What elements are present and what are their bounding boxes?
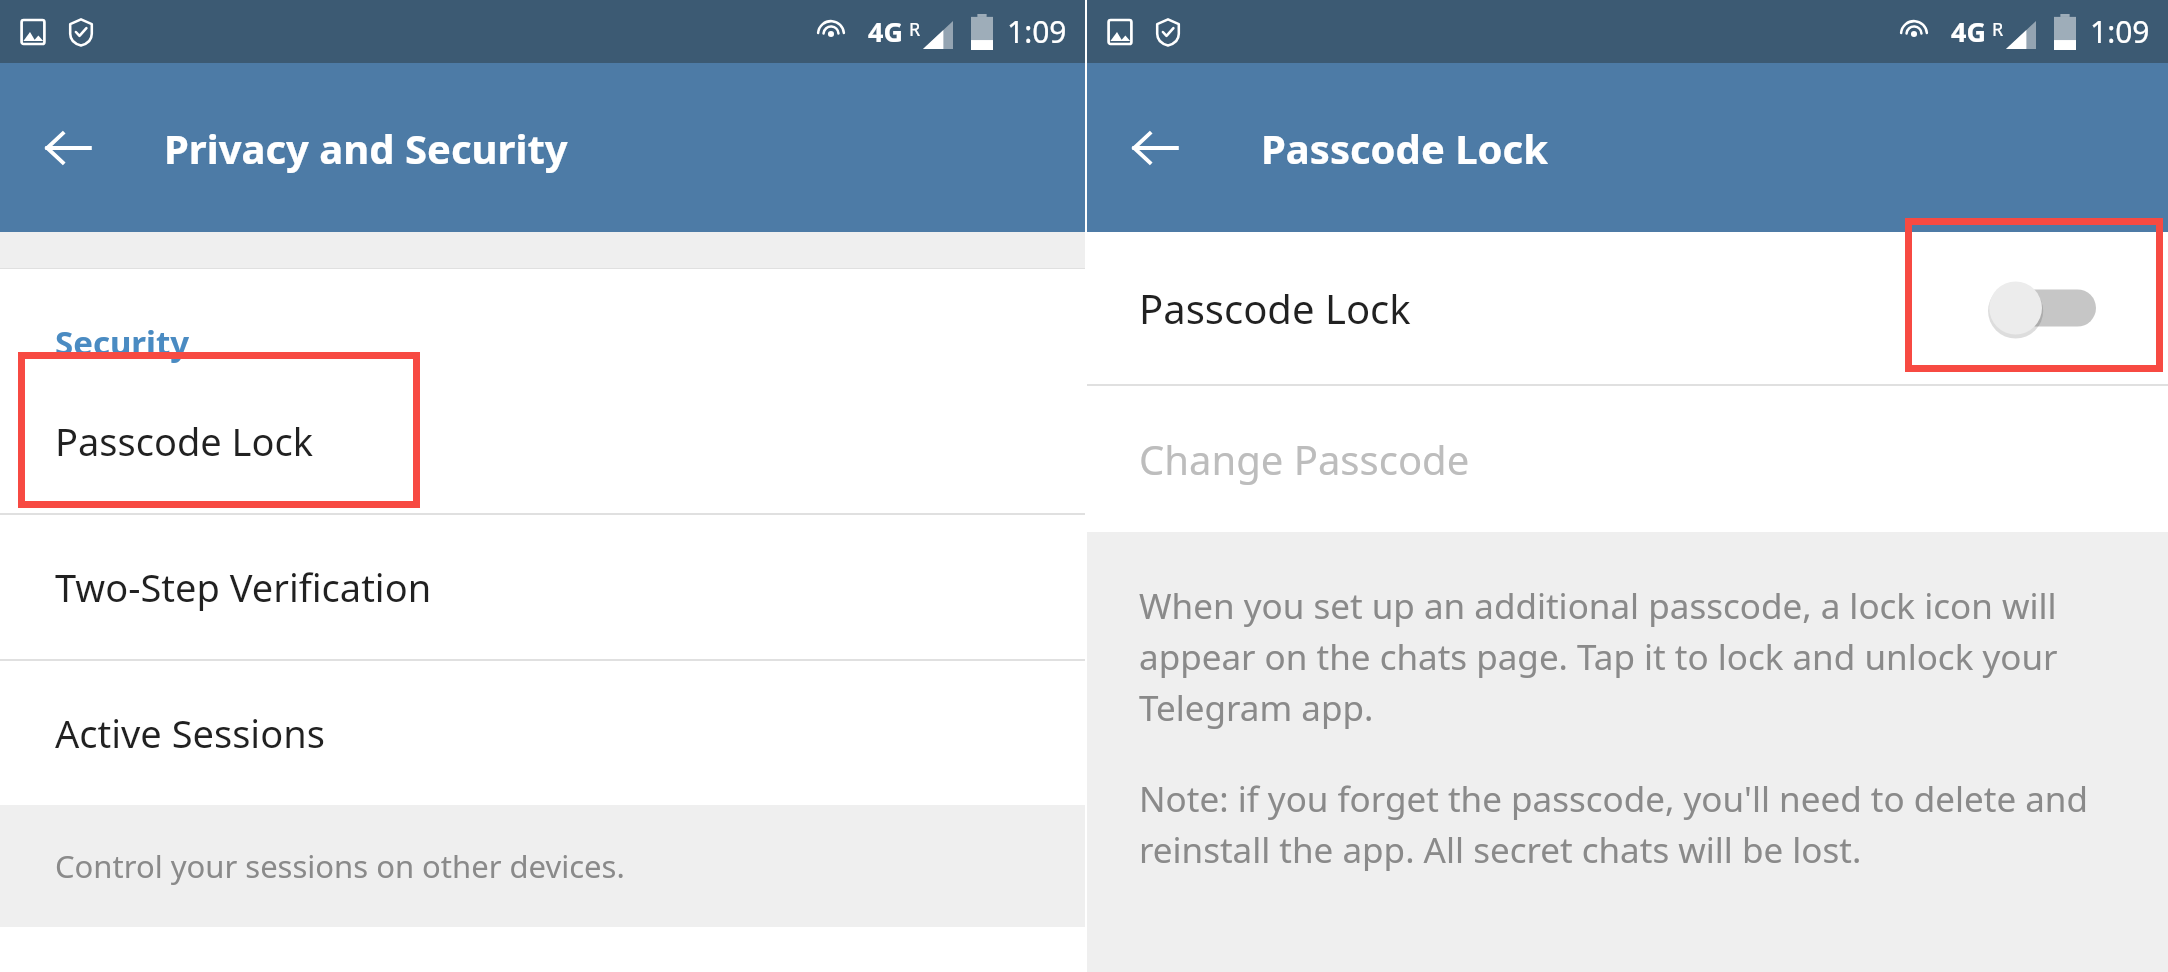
- staticText: Control your sessions on other devices.: [55, 845, 625, 887]
- button[interactable]: Active Sessions: [0, 661, 1085, 805]
- button[interactable]: Two-Step Verification: [0, 515, 1085, 659]
- staticText: Change Passcode: [1139, 432, 1470, 486]
- staticText: Passcode Lock: [1139, 281, 1411, 335]
- staticText: Two-Step Verification: [55, 561, 432, 613]
- staticText: Security: [55, 320, 190, 365]
- staticText: 1:09: [2090, 11, 2150, 52]
- staticText: Privacy and Security: [164, 121, 568, 175]
- staticText: Passcode Lock: [1261, 121, 1548, 175]
- staticText: 4G: [1951, 13, 1986, 50]
- staticText: 4G: [868, 13, 903, 50]
- staticText: 1:09: [1007, 11, 1067, 52]
- button[interactable]: Back: [34, 114, 102, 182]
- staticText: Passcode Lock: [55, 415, 314, 467]
- other: Passcode Lock toggle: [1976, 278, 2096, 338]
- button[interactable]: Change Passcode: [1087, 386, 2168, 532]
- button[interactable]: Passcode Lock: [0, 369, 1085, 513]
- staticText: Active Sessions: [55, 707, 325, 759]
- staticText: R: [909, 17, 921, 42]
- staticText: Note: if you forget the passcode, you'll…: [1139, 775, 2124, 873]
- staticText: When you set up an additional passcode, …: [1139, 582, 2124, 731]
- button[interactable]: Passcode Lock: [1087, 232, 2168, 384]
- staticText: R: [1992, 17, 2004, 42]
- button[interactable]: Back: [1121, 114, 1189, 182]
